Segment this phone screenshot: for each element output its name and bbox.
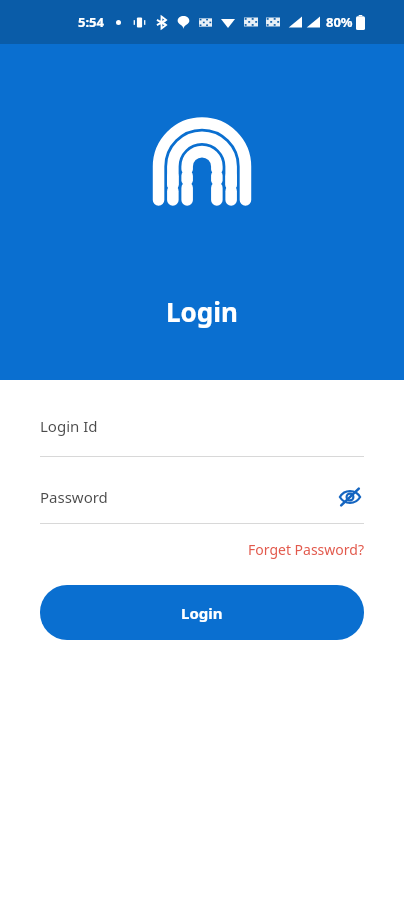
button[interactable]: Forget Password? [248,538,364,561]
staticText: 80% [326,13,353,31]
button[interactable]: Login Id [40,416,364,457]
staticText: 5:54 [78,13,104,31]
staticText: Login [166,294,238,329]
staticText: Login [181,603,223,623]
button[interactable]: Login [40,585,364,640]
staticText: Forget Password? [248,540,364,559]
staticText: Login Id [40,416,98,436]
button[interactable]: Password [40,483,364,511]
staticText: Password [40,487,336,507]
button[interactable]: Show password [336,483,364,511]
